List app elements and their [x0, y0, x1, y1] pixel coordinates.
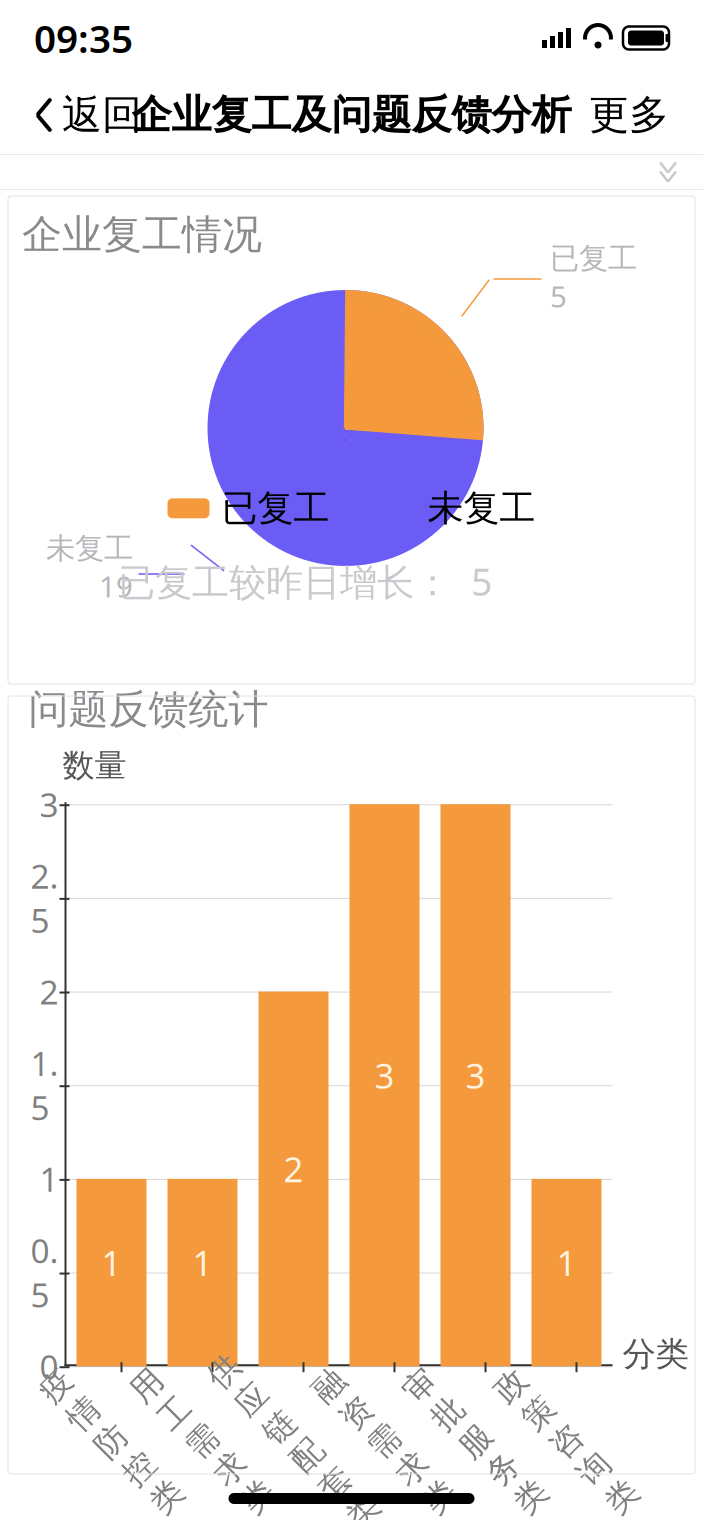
staticText: 已复工 — [221, 486, 329, 530]
staticText: 0 — [39, 1344, 58, 1388]
button[interactable]: 更多 — [583, 82, 675, 147]
staticText: 09:35 — [34, 12, 133, 64]
staticText: 企业复工情况 — [22, 210, 262, 259]
staticText: 已复工较昨日增长： 5 — [118, 556, 492, 606]
staticText: 问题反馈统计 — [28, 685, 268, 734]
staticText: 2 — [39, 969, 58, 1014]
staticText: 2 — [283, 1146, 303, 1192]
staticText: 19 — [99, 566, 133, 605]
staticText: 返回 — [62, 90, 142, 139]
staticText: 融资需求类 — [368, 1343, 400, 1520]
staticText: 数量 — [62, 746, 126, 785]
staticText: 企业复工及问题反馈分析 — [131, 90, 571, 139]
staticText: 1 — [101, 1239, 121, 1285]
staticText: 审批服务类 — [459, 1343, 491, 1520]
staticText: 3 — [465, 1052, 485, 1098]
staticText: 3 — [374, 1052, 394, 1098]
staticText: 政策咨询类 — [550, 1343, 582, 1520]
staticText: 1 — [192, 1239, 212, 1285]
staticText: 1.5 — [30, 1041, 58, 1129]
staticText: 5 — [550, 276, 567, 315]
staticText: 更多 — [589, 90, 669, 139]
staticText: 用工需求类 — [186, 1343, 218, 1520]
staticText: 未复工 — [46, 530, 133, 566]
staticText: 3 — [39, 782, 58, 826]
staticText: 0.5 — [30, 1228, 58, 1317]
staticText: 已复工 — [550, 240, 637, 276]
staticText: 未复工 — [427, 486, 535, 530]
staticText: 疫情防控类 — [95, 1343, 127, 1520]
button[interactable]: 展开 — [651, 157, 685, 187]
staticText: 1 — [556, 1239, 576, 1285]
staticText: 供应链配套类 — [277, 1323, 309, 1520]
button[interactable]: 返回 — [28, 82, 148, 147]
staticText: 2.5 — [30, 854, 58, 942]
staticText: 分类 — [622, 1334, 688, 1375]
staticText: 1 — [39, 1157, 58, 1201]
